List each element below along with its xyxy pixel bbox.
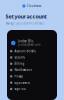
button[interactable]: Security [7,54,57,61]
staticText: Sign out [14,87,26,91]
button[interactable]: Billing [7,61,57,67]
staticText: Manage your profile details [5,22,43,25]
button[interactable]: Appearance [7,79,57,86]
button[interactable]: Notifications [7,67,57,73]
staticText: Jordan Ellis [18,39,33,43]
button[interactable]: Account details [7,48,57,54]
staticText: jordan@mail.com [18,43,40,46]
staticText: Notifications [14,68,31,72]
staticText: Appearance [14,81,30,84]
staticText: Cloudwise [27,4,42,8]
staticText: Privacy [14,75,22,78]
staticText: Billing [14,62,24,65]
staticText: Set your account [5,13,46,20]
button[interactable]: Privacy [7,73,57,79]
staticText: Account details [14,49,35,53]
staticText: Security [14,56,24,59]
button[interactable]: Jordan Ellis [7,30,57,48]
button[interactable]: Sign out [7,86,57,92]
